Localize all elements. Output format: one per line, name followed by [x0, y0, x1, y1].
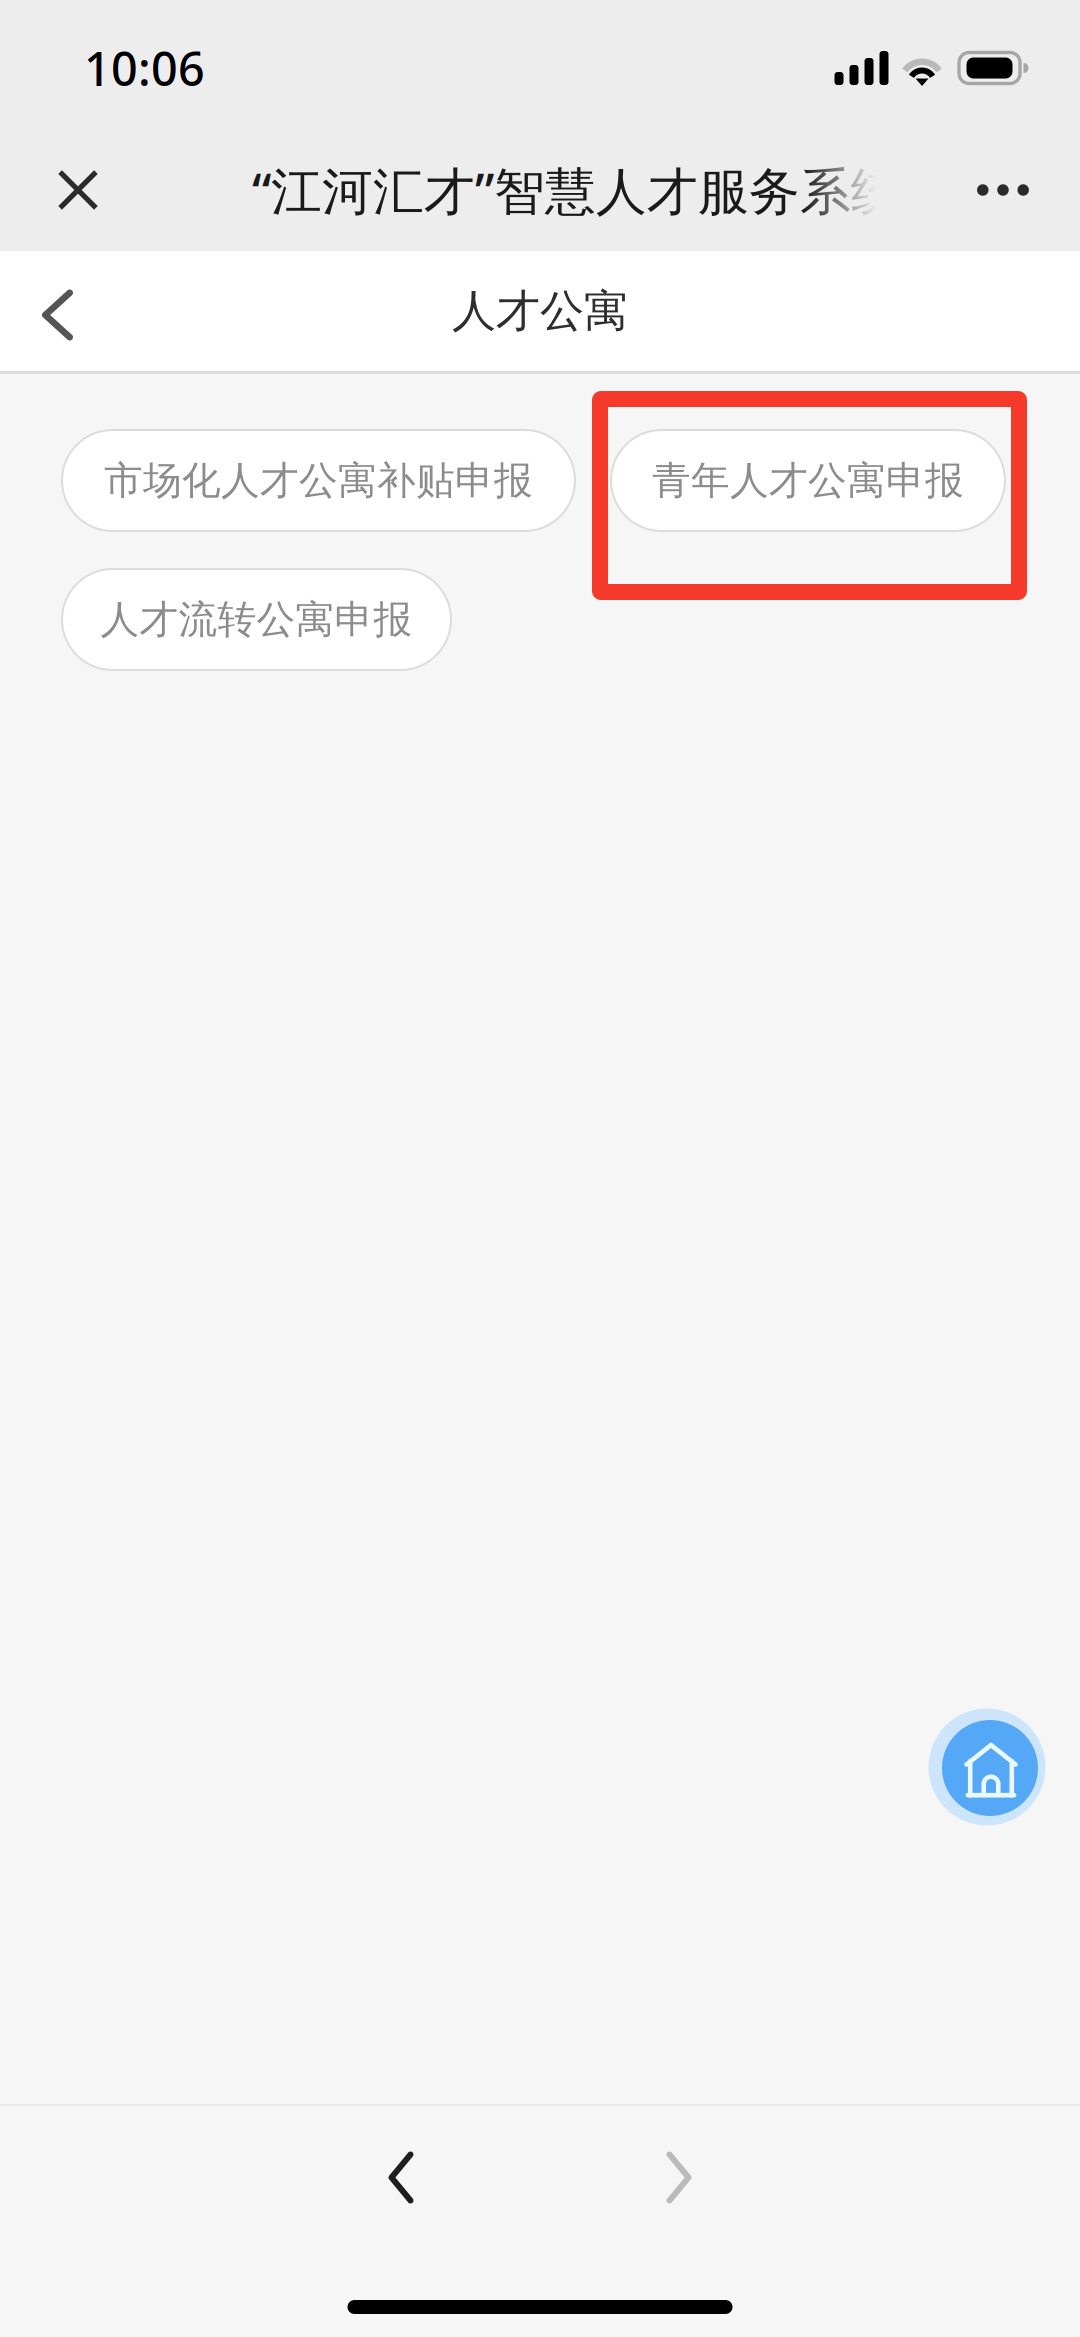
button[interactable]: 人才流转公寓申报 — [62, 569, 451, 670]
staticText: 人才流转公寓申报 — [100, 596, 412, 643]
button[interactable]: 市场化人才公寓补贴申报 — [62, 430, 575, 531]
button[interactable]: 青年人才公寓申报 — [611, 430, 1005, 531]
staticText: 10:06 — [84, 37, 205, 99]
button[interactable]: More — [953, 140, 1053, 240]
button[interactable]: Forward — [624, 2122, 734, 2232]
staticText: “江河汇才”智慧人才服务系统 — [252, 156, 902, 224]
staticText: 人才公寓 — [452, 284, 628, 338]
staticText: 青年人才公寓申报 — [652, 457, 964, 504]
button[interactable]: Back — [42, 263, 138, 359]
button[interactable]: Back — [346, 2122, 456, 2232]
button[interactable]: Close — [28, 140, 128, 240]
staticText: 市场化人才公寓补贴申报 — [104, 457, 533, 504]
button[interactable]: Home — [924, 1704, 1049, 1829]
